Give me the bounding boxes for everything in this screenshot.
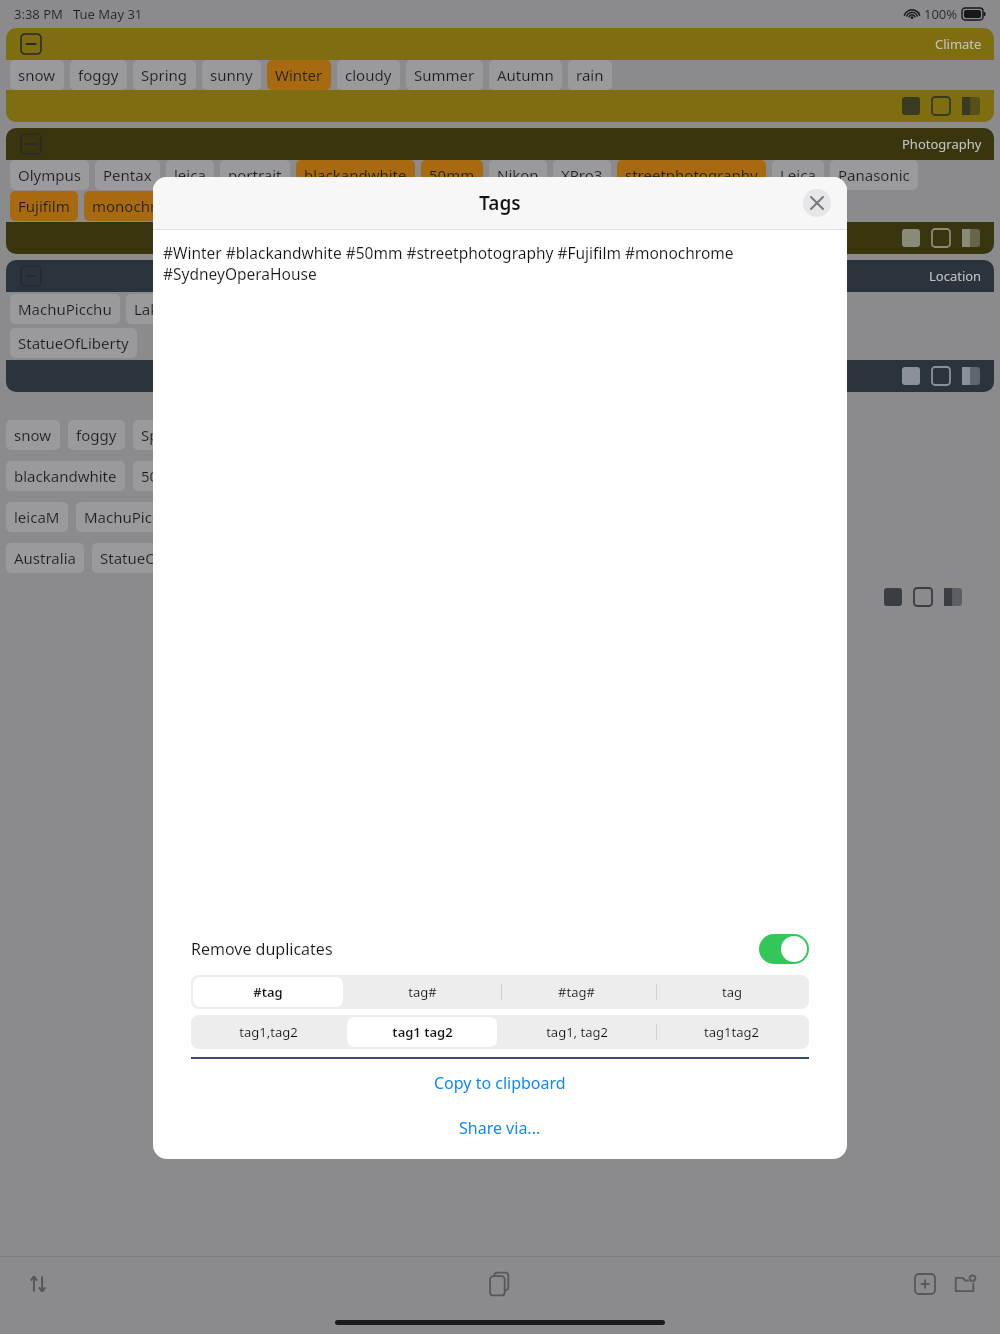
button[interactable]: LakeLouise	[126, 294, 221, 324]
button[interactable]: Add tag	[908, 1267, 942, 1301]
button[interactable]: #tag	[193, 977, 343, 1007]
button[interactable]: Outline view	[930, 227, 952, 249]
button[interactable]: Grid view	[882, 586, 904, 608]
button[interactable]: Australia	[6, 543, 84, 573]
button[interactable]: 50mm	[133, 461, 195, 491]
button[interactable]: portrait	[220, 160, 290, 190]
button[interactable]: Pentax	[95, 160, 160, 190]
button[interactable]: Share via...	[153, 1107, 847, 1149]
button[interactable]: Collapse section	[18, 131, 44, 157]
button[interactable]: Split view	[960, 365, 982, 387]
staticText: Photography	[902, 135, 982, 153]
button[interactable]: #tag#	[501, 977, 652, 1007]
button[interactable]: tag1,tag2	[193, 1017, 343, 1047]
button[interactable]: Split view	[960, 227, 982, 249]
button[interactable]: Winter	[267, 60, 331, 90]
button[interactable]: Collapse section	[18, 31, 44, 57]
button[interactable]: MachuPicchu	[76, 502, 186, 532]
button[interactable]: blackandwhite	[6, 461, 125, 491]
button[interactable]: snow	[6, 420, 60, 450]
button[interactable]: Nikon	[489, 160, 547, 190]
button[interactable]: Panasonic	[830, 160, 918, 190]
button[interactable]: tag#	[347, 977, 497, 1007]
button[interactable]: snow	[10, 60, 64, 90]
button[interactable]: foggy	[68, 420, 125, 450]
button[interactable]: Outline view	[930, 365, 952, 387]
button[interactable]: Autumn	[489, 60, 562, 90]
button[interactable]: Olympus	[10, 160, 89, 190]
button[interactable]: Collapse section	[6, 28, 994, 60]
button[interactable]: rain	[568, 60, 612, 90]
button[interactable]: StatueOfLiberty	[92, 543, 219, 573]
button[interactable]: Spring	[133, 60, 196, 90]
button[interactable]: StatueOfLiberty	[10, 328, 137, 358]
button[interactable]: Split view	[942, 586, 964, 608]
button[interactable]: Remove duplicates toggle	[759, 934, 809, 964]
button[interactable]: XPro3	[553, 160, 611, 190]
button[interactable]: cloudy	[337, 60, 400, 90]
button[interactable]: Copy	[478, 1262, 522, 1306]
button[interactable]: Close	[803, 189, 831, 217]
button[interactable]: Summer	[406, 60, 483, 90]
button[interactable]: Sort	[18, 1264, 58, 1304]
staticText: #tag#	[558, 983, 595, 1001]
button[interactable]: Grid view	[900, 95, 922, 117]
button[interactable]: Split view	[960, 95, 982, 117]
button[interactable]: tag	[656, 977, 807, 1007]
button[interactable]: leicaM	[6, 502, 68, 532]
button[interactable]: MachuPicchu	[10, 294, 120, 324]
button[interactable]: 50mm	[421, 160, 483, 190]
button[interactable]: Outline view	[930, 95, 952, 117]
staticText: tag1, tag2	[546, 1023, 608, 1041]
button[interactable]: Collapse section	[18, 263, 44, 289]
button[interactable]: sunny	[202, 60, 261, 90]
button[interactable]: blackandwhite	[296, 160, 415, 190]
staticText: Share via...	[459, 1117, 541, 1139]
button[interactable]: New folder	[948, 1267, 982, 1301]
button[interactable]: Spring	[133, 420, 196, 450]
button[interactable]: Grid view	[900, 227, 922, 249]
button[interactable]: Leica	[772, 160, 824, 190]
button[interactable]: tag1 tag2	[347, 1017, 497, 1047]
button[interactable]: leica	[166, 160, 214, 190]
button[interactable]: Collapse section	[6, 128, 994, 160]
staticText: #tag	[253, 983, 283, 1001]
button[interactable]: Outline view	[912, 586, 934, 608]
button[interactable]: Grid view	[900, 365, 922, 387]
button[interactable]: Fujifilm	[10, 191, 78, 221]
staticText: rain	[576, 65, 604, 85]
button[interactable]: monochrome	[84, 191, 196, 221]
button[interactable]: foggy	[70, 60, 127, 90]
button[interactable]: Copy to clipboard	[153, 1059, 847, 1107]
button[interactable]: Collapse section	[6, 260, 994, 292]
button[interactable]: streetphotography	[617, 160, 766, 190]
button[interactable]: tag1, tag2	[501, 1017, 652, 1047]
button[interactable]: tag1tag2	[656, 1017, 807, 1047]
